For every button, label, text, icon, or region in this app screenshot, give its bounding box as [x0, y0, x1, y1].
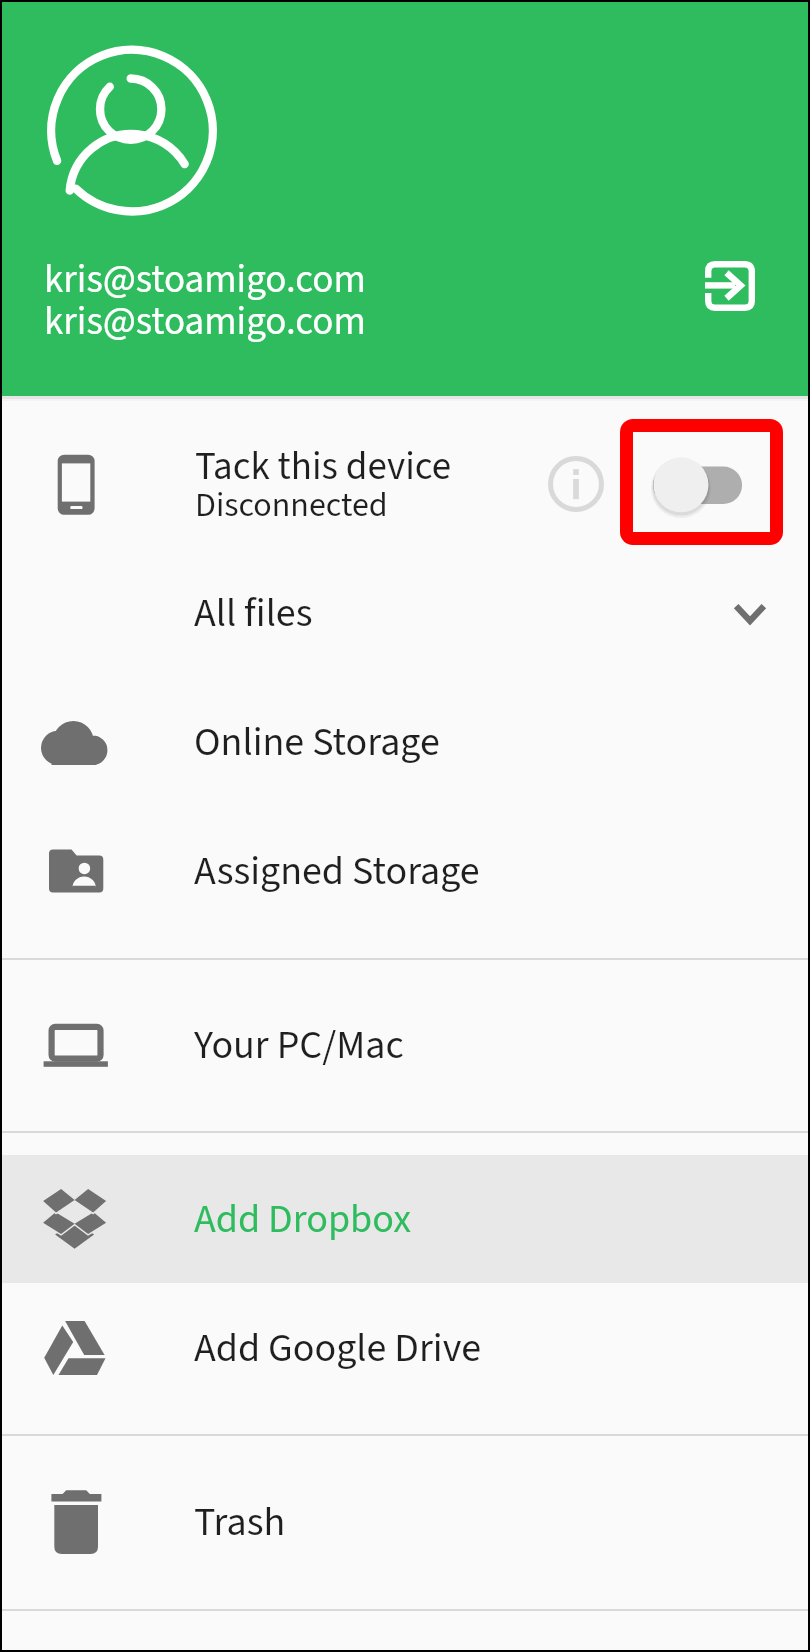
button[interactable]: All files [2, 549, 808, 678]
button[interactable]: Tack this device [2, 419, 808, 549]
button[interactable]: Profile [43, 38, 216, 211]
button[interactable]: Info [532, 440, 620, 528]
button[interactable]: Add Google Drive [2, 1283, 808, 1413]
staticText: Disconnected [195, 481, 388, 529]
button[interactable]: Sign in [680, 236, 780, 336]
staticText: All files [194, 585, 313, 642]
staticText: Trash [194, 1494, 286, 1551]
staticText: kris@stoamigo.com [44, 252, 366, 308]
staticText: Assigned Storage [194, 843, 480, 900]
staticText: kris@stoamigo.com [44, 294, 366, 350]
button[interactable]: Assigned Storage [2, 807, 808, 936]
button[interactable]: Online Storage [2, 678, 808, 807]
staticText: Add Dropbox [194, 1191, 412, 1248]
button[interactable]: Add Dropbox [2, 1155, 808, 1283]
button[interactable]: Trash [2, 1458, 808, 1587]
button[interactable]: Your PC/Mac [2, 981, 808, 1110]
staticText: Add Google Drive [194, 1320, 482, 1377]
staticText: Online Storage [194, 714, 440, 771]
button[interactable] [633, 432, 770, 532]
staticText: Tack this device [195, 439, 452, 495]
staticText: Your PC/Mac [194, 1017, 404, 1074]
